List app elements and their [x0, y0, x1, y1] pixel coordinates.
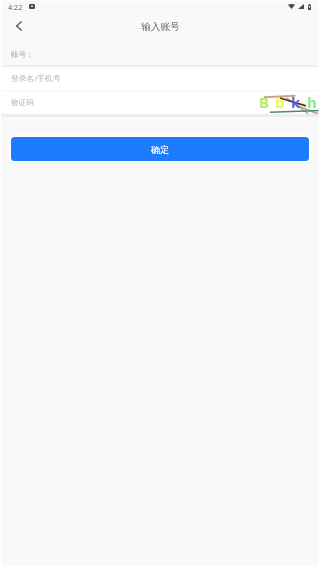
staticText: 登录名/手机号 — [11, 73, 61, 84]
button[interactable]: 验证码 — [0, 92, 320, 114]
staticText: B — [259, 92, 269, 112]
staticText: 确定 — [151, 144, 169, 155]
button[interactable]: Refresh captcha — [256, 92, 318, 114]
button[interactable]: 登录名/手机号 — [0, 67, 320, 90]
button[interactable]: Back — [0, 14, 32, 40]
staticText: 4:22 — [8, 2, 23, 12]
other: Wi-Fi — [288, 4, 295, 9]
button[interactable]: 确定 — [9, 135, 311, 163]
staticText: 账号： — [11, 50, 34, 60]
staticText: 输入账号 — [141, 21, 180, 33]
other: Signal — [298, 4, 304, 9]
staticText: 验证码 — [11, 98, 34, 108]
other: Battery — [308, 4, 311, 10]
staticText: k — [291, 92, 301, 112]
staticText: b — [275, 92, 285, 112]
staticText: h — [307, 92, 317, 112]
